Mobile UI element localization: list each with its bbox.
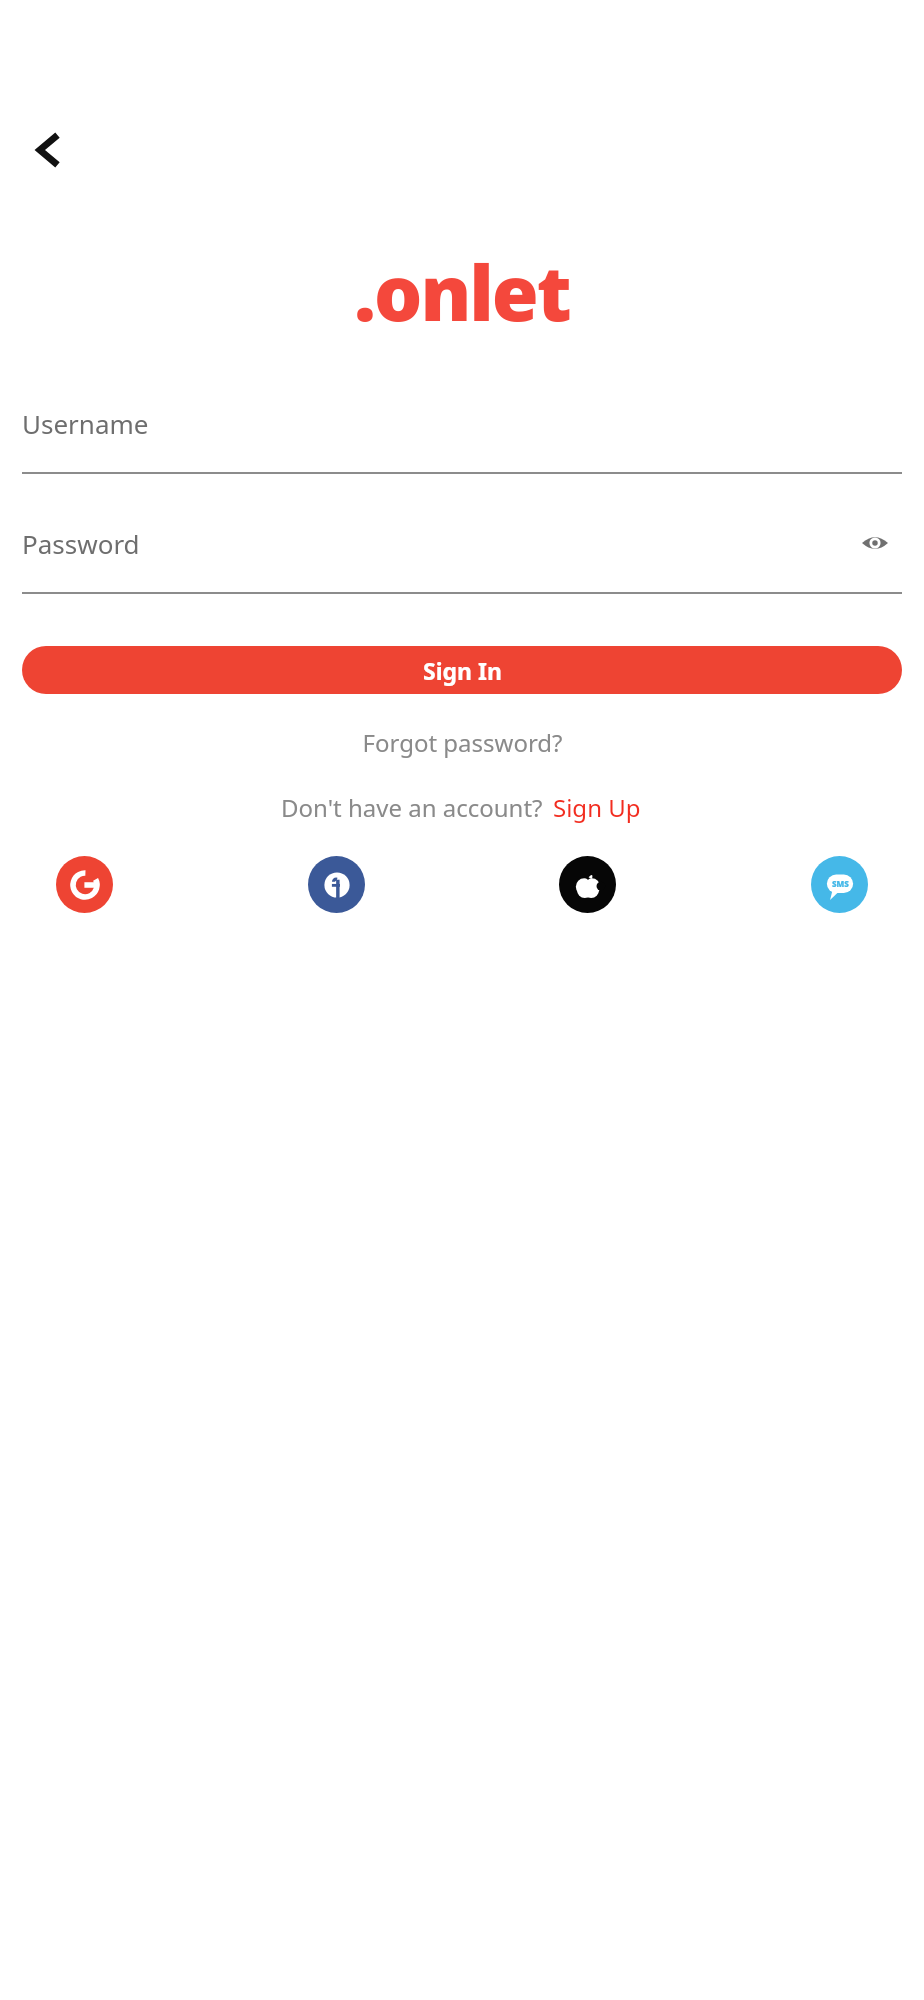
staticText: Forgot password? (362, 726, 563, 759)
button[interactable]: Show password (848, 516, 902, 570)
button[interactable]: Sign In (22, 646, 902, 694)
staticText: Sign In (423, 655, 502, 686)
button[interactable]: Sign in with Facebook (308, 856, 365, 913)
button[interactable]: Password (22, 516, 848, 570)
button[interactable]: Sign in with Google (56, 856, 113, 913)
staticText: Don't have an account? (281, 791, 543, 824)
staticText: Sign Up (553, 791, 641, 824)
button[interactable]: Sign in with SMS (811, 856, 868, 913)
button[interactable]: Sign Up (551, 787, 643, 828)
staticText: .onlet (354, 240, 570, 344)
staticText: Username (22, 406, 149, 441)
button[interactable]: Forgot password? (352, 720, 573, 765)
staticText: SMS (832, 878, 849, 889)
button[interactable]: Username (22, 396, 902, 474)
button[interactable]: Sign in with Apple (559, 856, 616, 913)
staticText: Password (22, 526, 140, 561)
button[interactable]: Back (18, 118, 82, 182)
